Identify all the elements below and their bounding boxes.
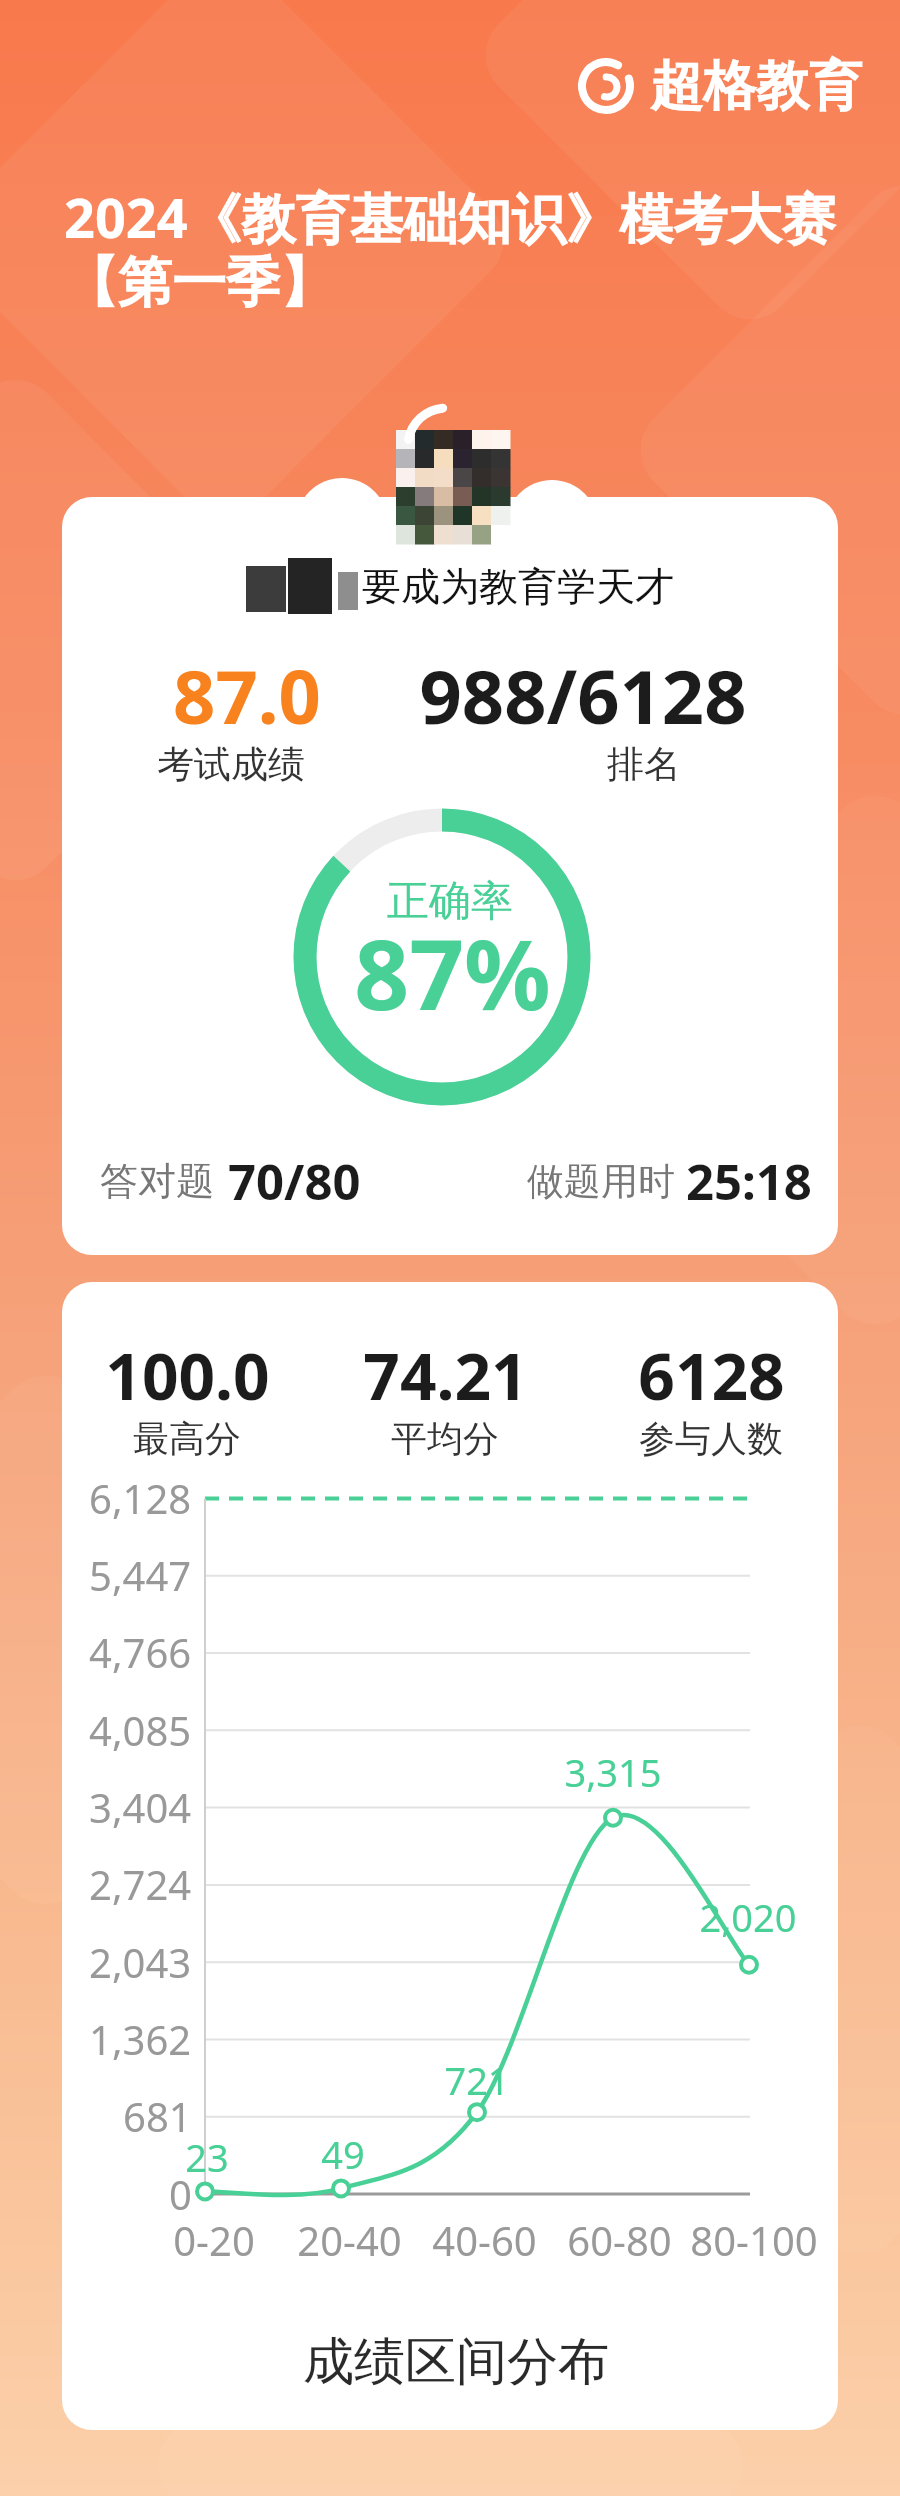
staticText: 1,362	[89, 2012, 192, 2066]
staticText: 5,447	[89, 1548, 192, 1602]
staticText: 0-20	[173, 2213, 255, 2267]
staticText: 排名	[607, 741, 681, 788]
staticText: 4,766	[89, 1625, 192, 1679]
staticText: 721	[444, 2054, 510, 2106]
staticText: 做题用时	[527, 1158, 675, 1205]
staticText: 0	[169, 2167, 192, 2221]
staticText: 87.0	[173, 645, 321, 746]
staticText: 3,404	[89, 1780, 192, 1834]
staticText: 2024《教育基础知识》模考大赛	[64, 180, 836, 254]
staticText: 超格教育	[650, 53, 862, 120]
staticText: 3,315	[564, 1746, 662, 1798]
staticText: 25:18	[686, 1148, 812, 1215]
staticText: 2,043	[89, 1935, 192, 1989]
staticText: 参与人数	[639, 1416, 783, 1461]
staticText: 60-80	[567, 2213, 672, 2267]
staticText: 正确率	[387, 875, 513, 928]
staticText: 6,128	[89, 1471, 192, 1525]
staticText: 74.21	[363, 1332, 528, 1419]
staticText: 【第一季】	[64, 249, 334, 317]
staticText: 100.0	[105, 1332, 270, 1419]
staticText: 最高分	[133, 1416, 241, 1461]
staticText: 成绩区间分布	[303, 2330, 609, 2394]
staticText: 20-40	[297, 2213, 402, 2267]
staticText: 考试成绩	[157, 741, 305, 788]
staticText: 答对题	[100, 1157, 214, 1205]
staticText: 平均分	[391, 1416, 499, 1461]
staticText: 988/6128	[419, 645, 747, 746]
staticText: 6128	[638, 1332, 785, 1419]
staticText: 要成为教育学天才	[362, 562, 674, 611]
staticText: 2,020	[699, 1891, 797, 1943]
staticText: 681	[123, 2089, 192, 2143]
staticText: 4,085	[89, 1703, 192, 1757]
staticText: 23	[185, 2131, 229, 2183]
staticText: 87%	[354, 907, 551, 1038]
staticText: 2,724	[89, 1857, 192, 1911]
staticText: 49	[321, 2128, 365, 2180]
staticText: 70/80	[228, 1148, 361, 1215]
staticText: 80-100	[690, 2213, 818, 2267]
staticText: 40-60	[432, 2213, 537, 2267]
button[interactable]	[62, 1282, 838, 2430]
button[interactable]	[62, 497, 838, 1255]
